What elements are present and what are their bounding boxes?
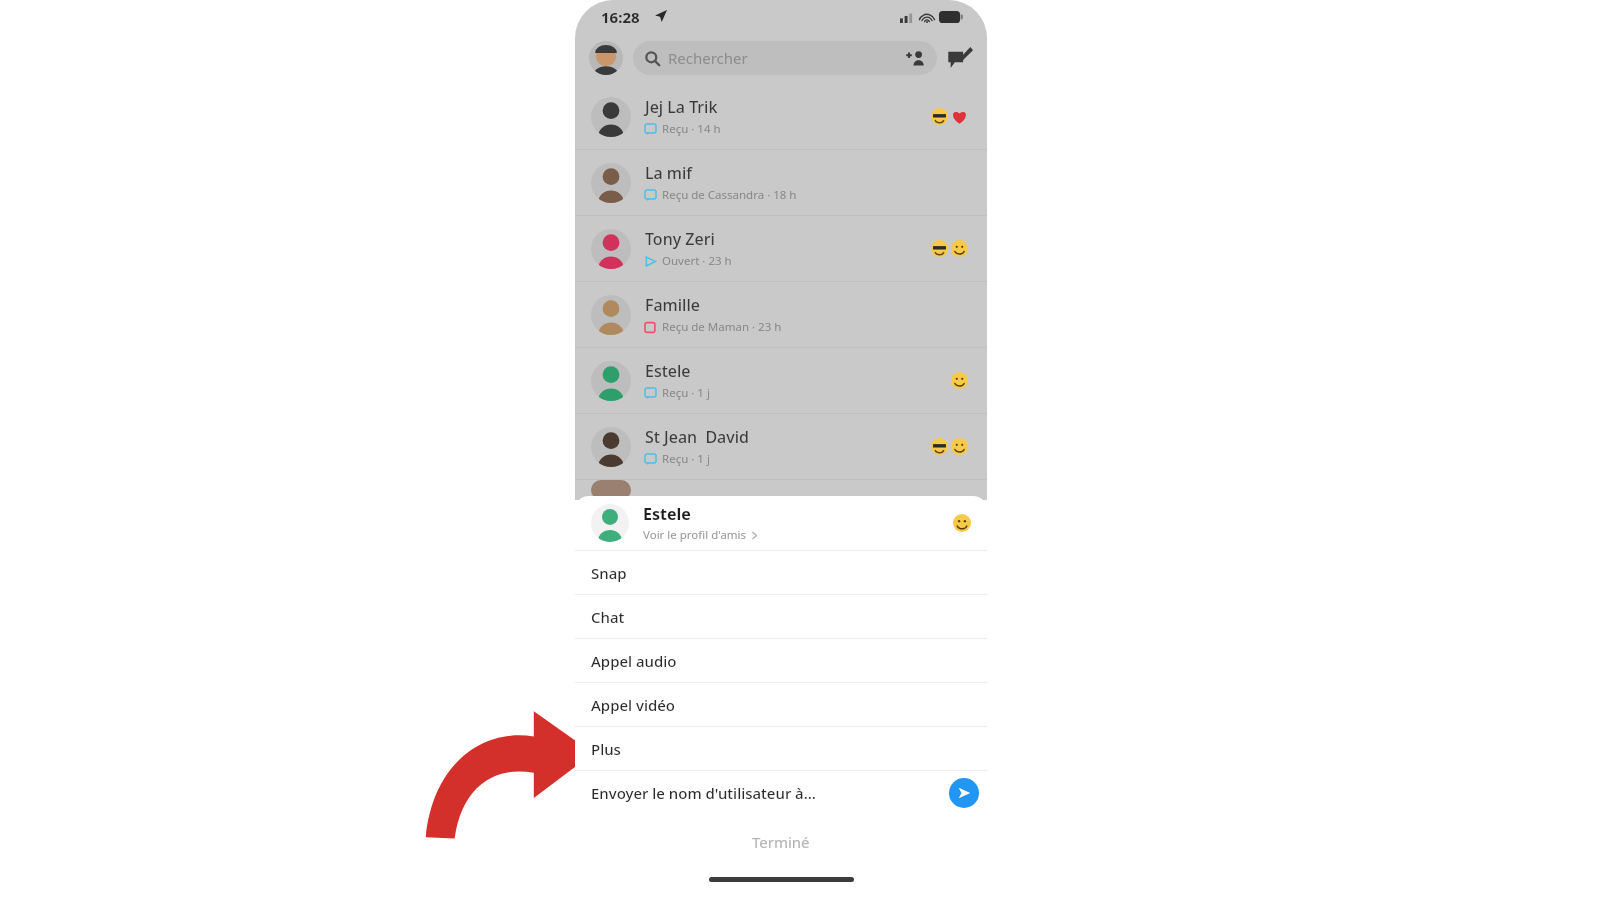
staticText: Appel vidéo bbox=[591, 695, 676, 715]
button[interactable]: Envoyer le nom d'utilisateur à... bbox=[575, 771, 987, 815]
button[interactable]: Famille bbox=[575, 282, 987, 348]
staticText: St Jean David bbox=[645, 426, 749, 448]
staticText: Estele bbox=[643, 503, 691, 525]
button[interactable]: Jej La Trik bbox=[575, 84, 987, 150]
button[interactable]: Estele bbox=[575, 496, 987, 550]
staticText: Terminé bbox=[752, 832, 810, 852]
button[interactable]: Profil bbox=[589, 41, 623, 75]
staticText: Reçu · 1 j bbox=[662, 385, 710, 401]
staticText: Reçu · 14 h bbox=[662, 121, 721, 137]
staticText: Famille bbox=[645, 294, 700, 316]
staticText: La mif bbox=[645, 162, 693, 184]
staticText: Appel audio bbox=[591, 651, 677, 671]
staticText: Jej La Trik bbox=[645, 96, 718, 118]
staticText: Chat bbox=[591, 607, 625, 627]
staticText: Reçu · 1 j bbox=[662, 451, 710, 467]
button[interactable]: Plus bbox=[575, 727, 987, 770]
staticText: Estele bbox=[645, 360, 691, 382]
staticText: 16:28 bbox=[601, 7, 640, 27]
staticText: Tony Zeri bbox=[645, 228, 715, 250]
button[interactable]: La mif bbox=[575, 150, 987, 216]
button[interactable]: Terminé bbox=[575, 829, 987, 855]
staticText: Reçu de Maman · 23 h bbox=[662, 319, 782, 335]
button[interactable]: Nouveau chat bbox=[947, 45, 973, 71]
button[interactable]: Envoyer bbox=[949, 778, 979, 808]
staticText: Envoyer le nom d'utilisateur à... bbox=[591, 783, 816, 803]
staticText: Ouvert · 23 h bbox=[662, 253, 732, 269]
button[interactable]: Snap bbox=[575, 551, 987, 594]
button[interactable]: Appel vidéo bbox=[575, 683, 987, 726]
staticText: Reçu de Cassandra · 18 h bbox=[662, 187, 797, 203]
button[interactable]: Appel audio bbox=[575, 639, 987, 682]
button[interactable]: Tony Zeri bbox=[575, 216, 987, 282]
button[interactable]: St Jean David bbox=[575, 414, 987, 480]
staticText: Plus bbox=[591, 739, 621, 759]
staticText: Voir le profil d'amis bbox=[643, 527, 747, 543]
staticText: Rechercher bbox=[668, 48, 748, 68]
button[interactable]: Rechercher bbox=[633, 41, 937, 75]
button[interactable]: Ajouter un ami bbox=[905, 48, 925, 68]
staticText: Snap bbox=[591, 563, 627, 583]
button[interactable]: Estele bbox=[575, 348, 987, 414]
button[interactable]: Chat bbox=[575, 595, 987, 638]
